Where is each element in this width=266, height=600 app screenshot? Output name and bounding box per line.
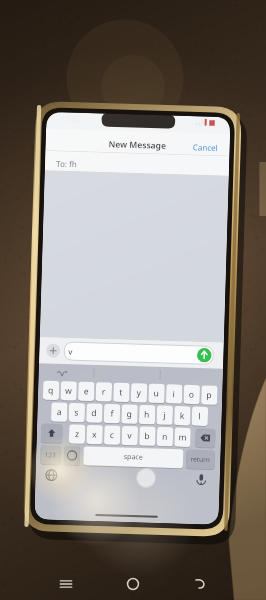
button[interactable]: Recents bbox=[50, 568, 82, 600]
button[interactable]: Back bbox=[184, 568, 216, 600]
button[interactable]: Home bbox=[117, 568, 149, 600]
